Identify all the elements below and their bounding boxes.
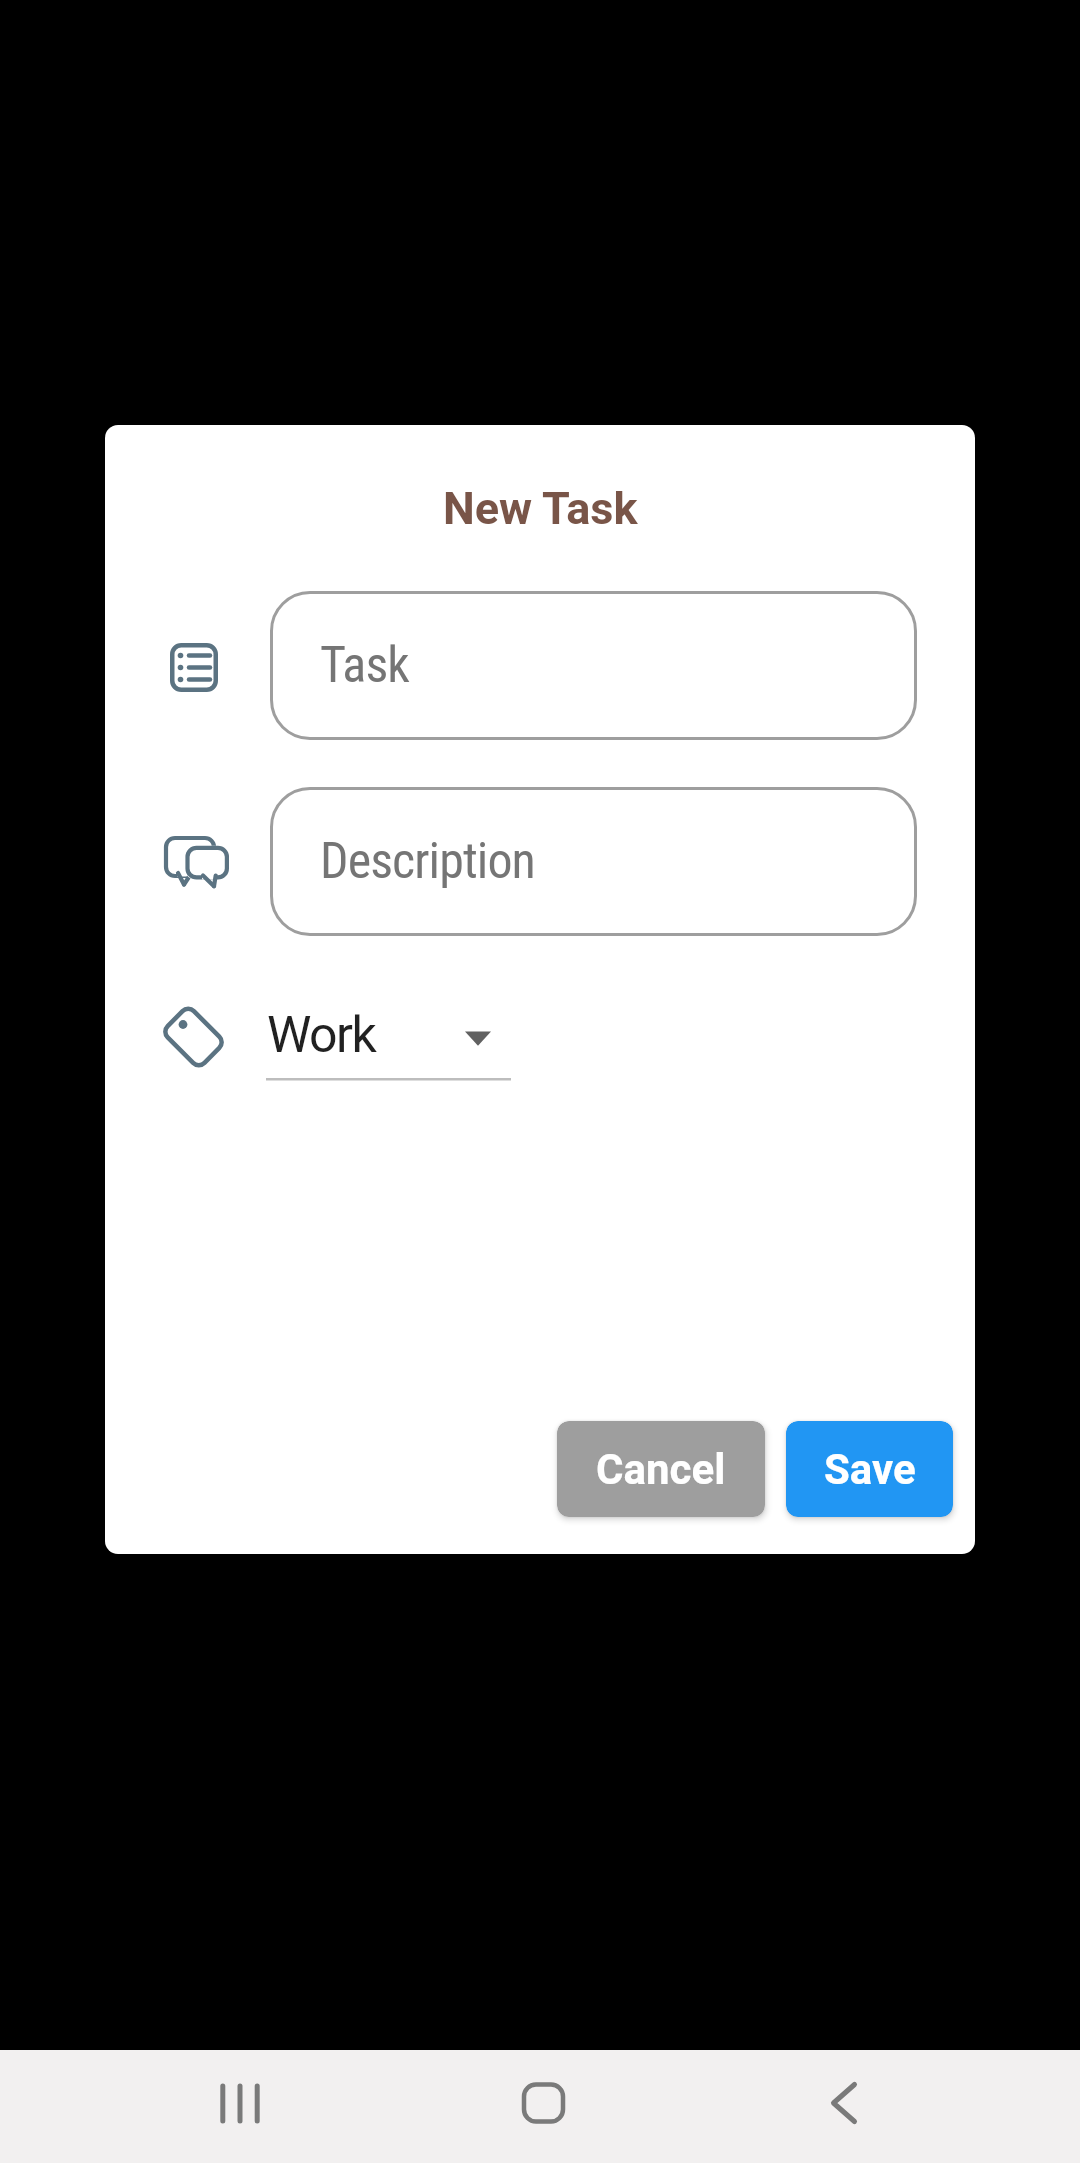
staticText: Cancel — [596, 1445, 726, 1494]
button[interactable] — [499, 2059, 587, 2147]
staticText: New Task — [443, 482, 638, 535]
button[interactable]: Work — [266, 1000, 516, 1082]
button[interactable] — [800, 2059, 888, 2147]
staticText: Task — [320, 636, 409, 695]
button[interactable]: Description — [270, 787, 917, 936]
staticText: Save — [824, 1445, 916, 1494]
staticText: Description — [320, 832, 535, 891]
button[interactable]: Task — [270, 591, 917, 740]
button[interactable]: Save — [786, 1421, 953, 1517]
button[interactable] — [195, 2059, 283, 2147]
staticText: Work — [267, 1006, 376, 1065]
button[interactable]: Cancel — [557, 1421, 765, 1517]
